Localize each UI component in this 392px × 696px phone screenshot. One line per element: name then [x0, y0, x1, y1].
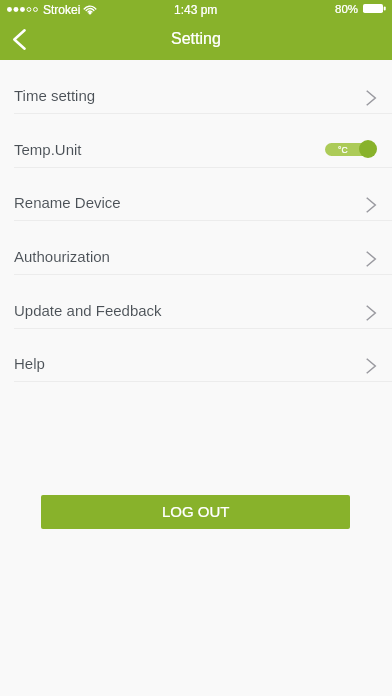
staticText: 1:43 pm: [174, 3, 218, 16]
staticText: Setting: [171, 30, 221, 48]
staticText: °C: [338, 145, 348, 154]
button[interactable]: Temperature unit toggle: [325, 139, 377, 159]
button[interactable]: Back: [0, 20, 44, 60]
button[interactable]: Rename Device: [0, 167, 392, 221]
staticText: Strokei: [43, 3, 81, 16]
staticText: Rename Device: [14, 194, 121, 211]
button[interactable]: Authourization: [0, 221, 392, 275]
staticText: Authourization: [14, 248, 110, 265]
button[interactable]: Help: [0, 328, 392, 382]
staticText: Update and Feedback: [14, 302, 162, 319]
staticText: Temp.Unit: [14, 141, 82, 158]
staticText: Time setting: [14, 87, 96, 104]
button[interactable]: Time setting: [0, 60, 392, 114]
button[interactable]: LOG OUT: [41, 495, 350, 529]
staticText: 80%: [335, 3, 359, 16]
staticText: Help: [14, 355, 45, 372]
staticText: LOG OUT: [162, 503, 230, 520]
button[interactable]: Temp.Unit: [0, 114, 392, 168]
button[interactable]: Update and Feedback: [0, 275, 392, 329]
